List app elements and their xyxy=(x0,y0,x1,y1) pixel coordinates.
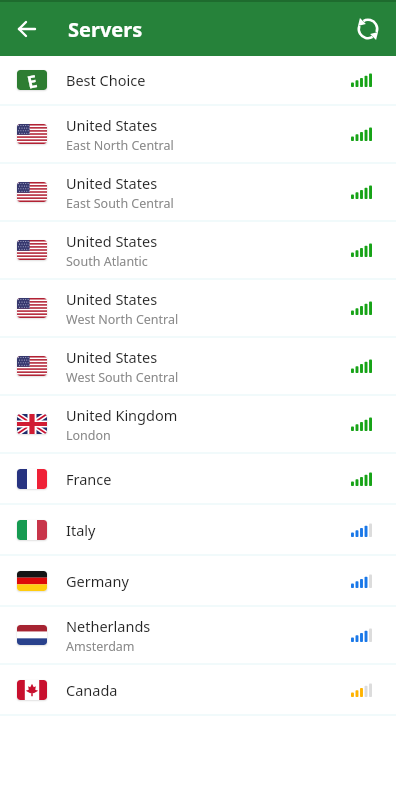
staticText: United States xyxy=(66,231,158,251)
button[interactable]: United States xyxy=(0,280,396,336)
staticText: East South Central xyxy=(66,195,174,212)
staticText: South Atlantic xyxy=(66,253,148,270)
button[interactable]: Germany xyxy=(0,556,396,605)
button[interactable]: United States xyxy=(0,164,396,220)
staticText: Netherlands xyxy=(66,616,151,636)
button[interactable] xyxy=(13,15,41,43)
staticText: Servers xyxy=(68,16,143,43)
staticText: West South Central xyxy=(66,369,179,386)
button[interactable]: E xyxy=(0,56,396,104)
staticText: United States xyxy=(66,173,158,193)
button[interactable]: United States xyxy=(0,222,396,278)
staticText: United States xyxy=(66,115,158,135)
staticText: West North Central xyxy=(66,311,179,328)
staticText: Canada xyxy=(66,680,118,700)
staticText: Germany xyxy=(66,571,129,591)
button[interactable]: France xyxy=(0,454,396,503)
button[interactable]: United Kingdom xyxy=(0,396,396,452)
staticText: United States xyxy=(66,347,158,367)
button[interactable] xyxy=(354,15,382,43)
staticText: Amsterdam xyxy=(66,638,135,655)
button[interactable]: United States xyxy=(0,106,396,162)
staticText: Best Choice xyxy=(66,70,146,90)
staticText: France xyxy=(66,469,112,489)
button[interactable]: Netherlands xyxy=(0,607,396,663)
staticText: United Kingdom xyxy=(66,405,178,425)
button[interactable]: United States xyxy=(0,338,396,394)
staticText: East North Central xyxy=(66,137,174,154)
staticText: E xyxy=(25,70,39,90)
staticText: London xyxy=(66,427,111,444)
button[interactable]: Canada xyxy=(0,665,396,714)
staticText: Italy xyxy=(66,520,96,540)
button[interactable]: Italy xyxy=(0,505,396,554)
staticText: United States xyxy=(66,289,158,309)
